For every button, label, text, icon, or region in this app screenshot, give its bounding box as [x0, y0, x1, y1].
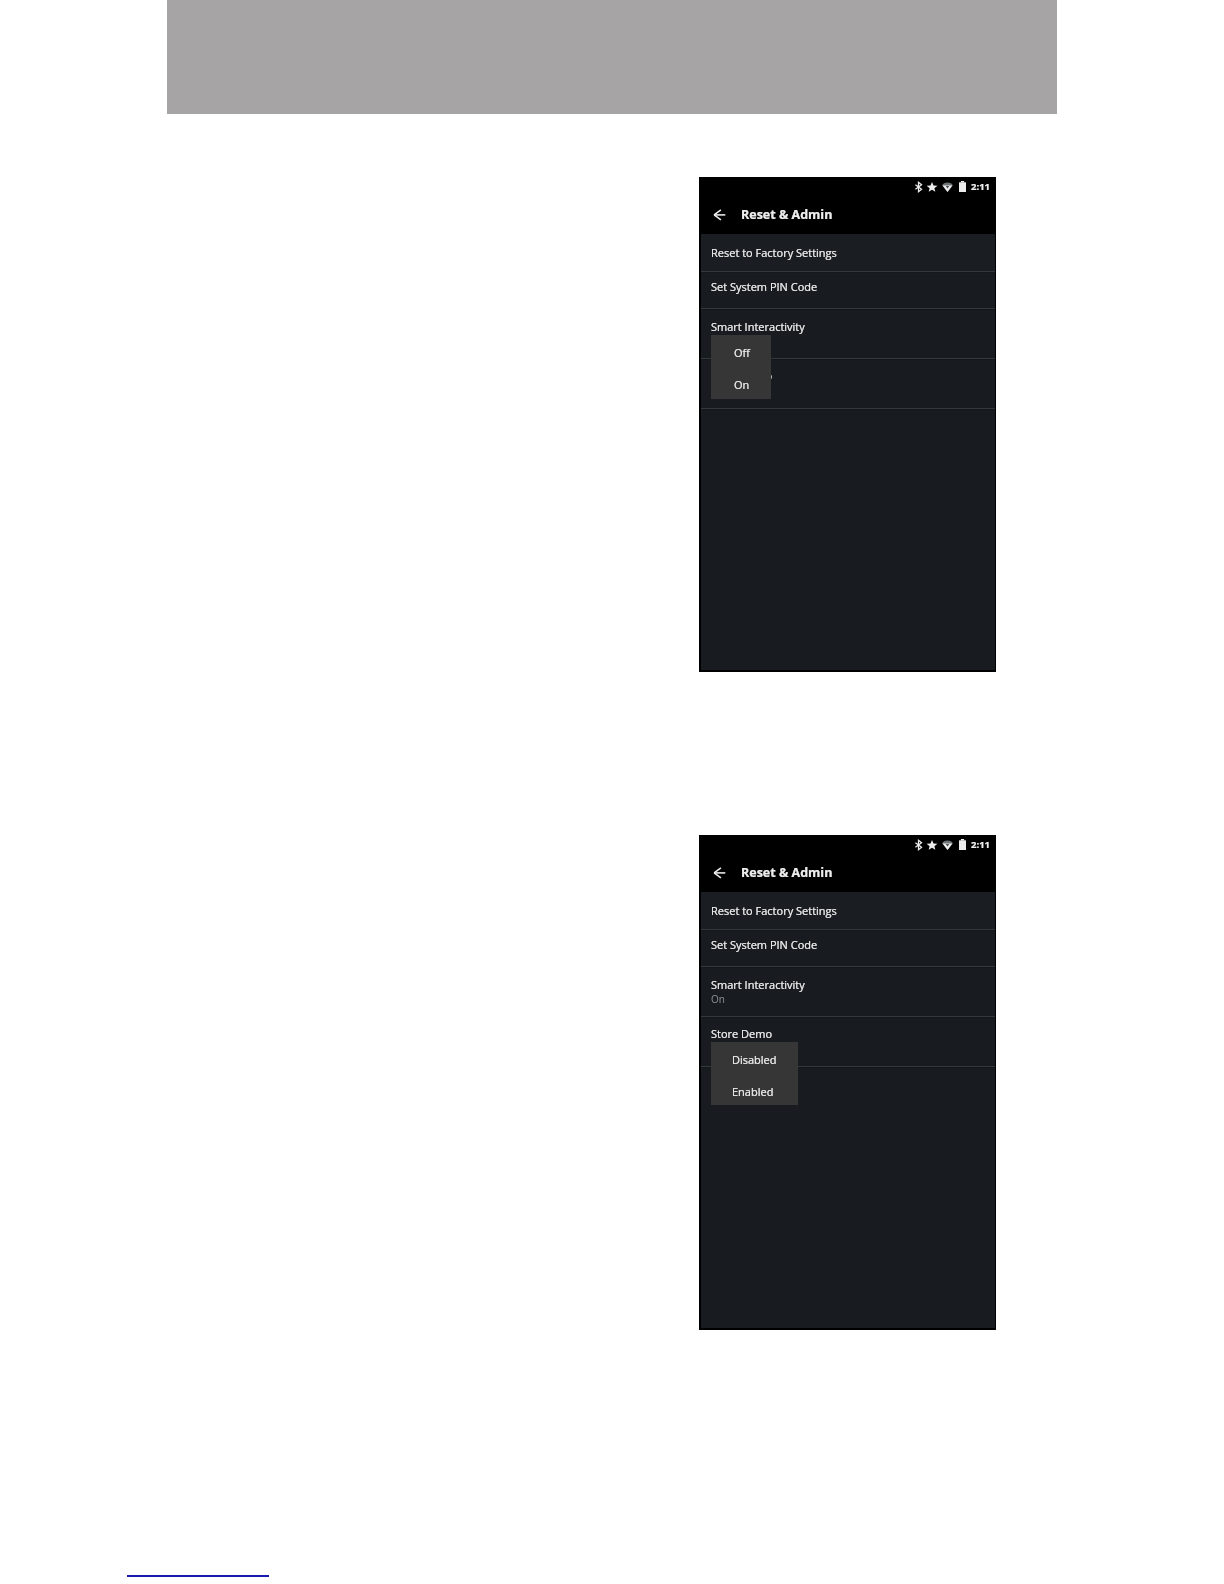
- staticText: Off: [734, 345, 750, 360]
- staticText: 2:11: [971, 180, 991, 193]
- staticText: Smart Interactivity: [711, 319, 805, 334]
- button[interactable]: [701, 892, 995, 930]
- other: Bluetooth on: [915, 182, 922, 192]
- button[interactable]: [701, 234, 995, 272]
- staticText: Reset to Factory Settings: [711, 903, 837, 918]
- staticText: Smart Interactivity: [711, 977, 805, 992]
- button[interactable]: [711, 366, 771, 398]
- button[interactable]: [701, 308, 995, 358]
- button[interactable]: [711, 1074, 798, 1105]
- staticText: Set System PIN Code: [711, 937, 818, 952]
- button[interactable]: [711, 1042, 798, 1073]
- button[interactable]: Back: [707, 860, 733, 886]
- button[interactable]: [701, 271, 995, 307]
- staticText: Disabled: [732, 1052, 777, 1067]
- staticText: Store Demo: [711, 1026, 773, 1041]
- staticText: Enabled: [732, 1084, 774, 1099]
- staticText: On: [734, 377, 750, 392]
- staticText: Reset & Admin: [741, 206, 833, 223]
- other: Battery: [959, 181, 966, 192]
- button[interactable]: [701, 1016, 995, 1066]
- staticText: 2:11: [971, 838, 991, 851]
- staticText: Set System PIN Code: [711, 279, 818, 294]
- other: Wi-Fi: [942, 181, 953, 192]
- button[interactable]: [701, 358, 995, 408]
- staticText: Store Demo: [711, 368, 773, 383]
- other: Battery: [959, 839, 966, 850]
- other: Starred: [927, 840, 937, 850]
- staticText: On: [711, 992, 725, 1006]
- staticText: Reset to Factory Settings: [711, 245, 837, 260]
- button[interactable]: Back: [707, 202, 733, 228]
- button[interactable]: [701, 966, 995, 1016]
- other: Wi-Fi: [942, 839, 953, 850]
- button[interactable]: [711, 335, 771, 367]
- button[interactable]: [701, 929, 995, 965]
- other: Starred: [927, 182, 937, 192]
- staticText: Reset & Admin: [741, 864, 833, 881]
- other: Bluetooth on: [915, 840, 922, 850]
